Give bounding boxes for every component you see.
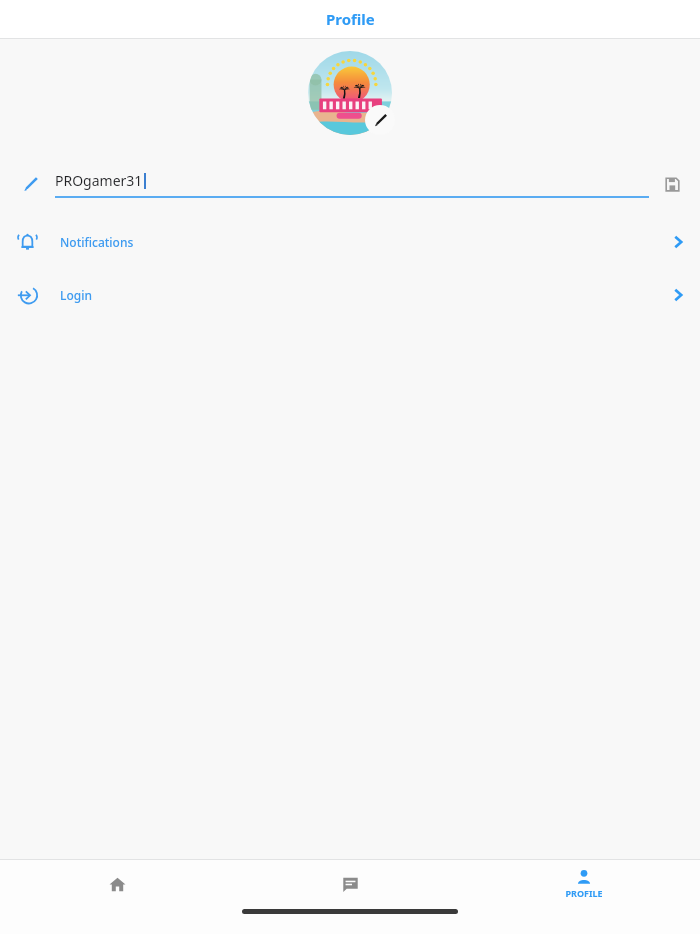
button[interactable]: Login <box>0 278 700 312</box>
staticText: PROFILE <box>565 887 603 899</box>
button[interactable]: Profile <box>467 860 700 908</box>
staticText: Profile <box>326 9 375 29</box>
button[interactable]: Home <box>0 860 234 908</box>
staticText: PROgamer31 <box>55 171 143 190</box>
button[interactable]: Profile picture <box>308 51 392 135</box>
staticText: Login <box>60 287 92 303</box>
button[interactable]: Edit profile picture <box>365 105 395 135</box>
button[interactable]: Save <box>657 169 687 199</box>
staticText: Notifications <box>60 234 134 250</box>
button[interactable]: Edit name <box>13 167 47 201</box>
button[interactable]: Notifications <box>0 225 700 259</box>
button[interactable]: Messages <box>234 860 467 908</box>
